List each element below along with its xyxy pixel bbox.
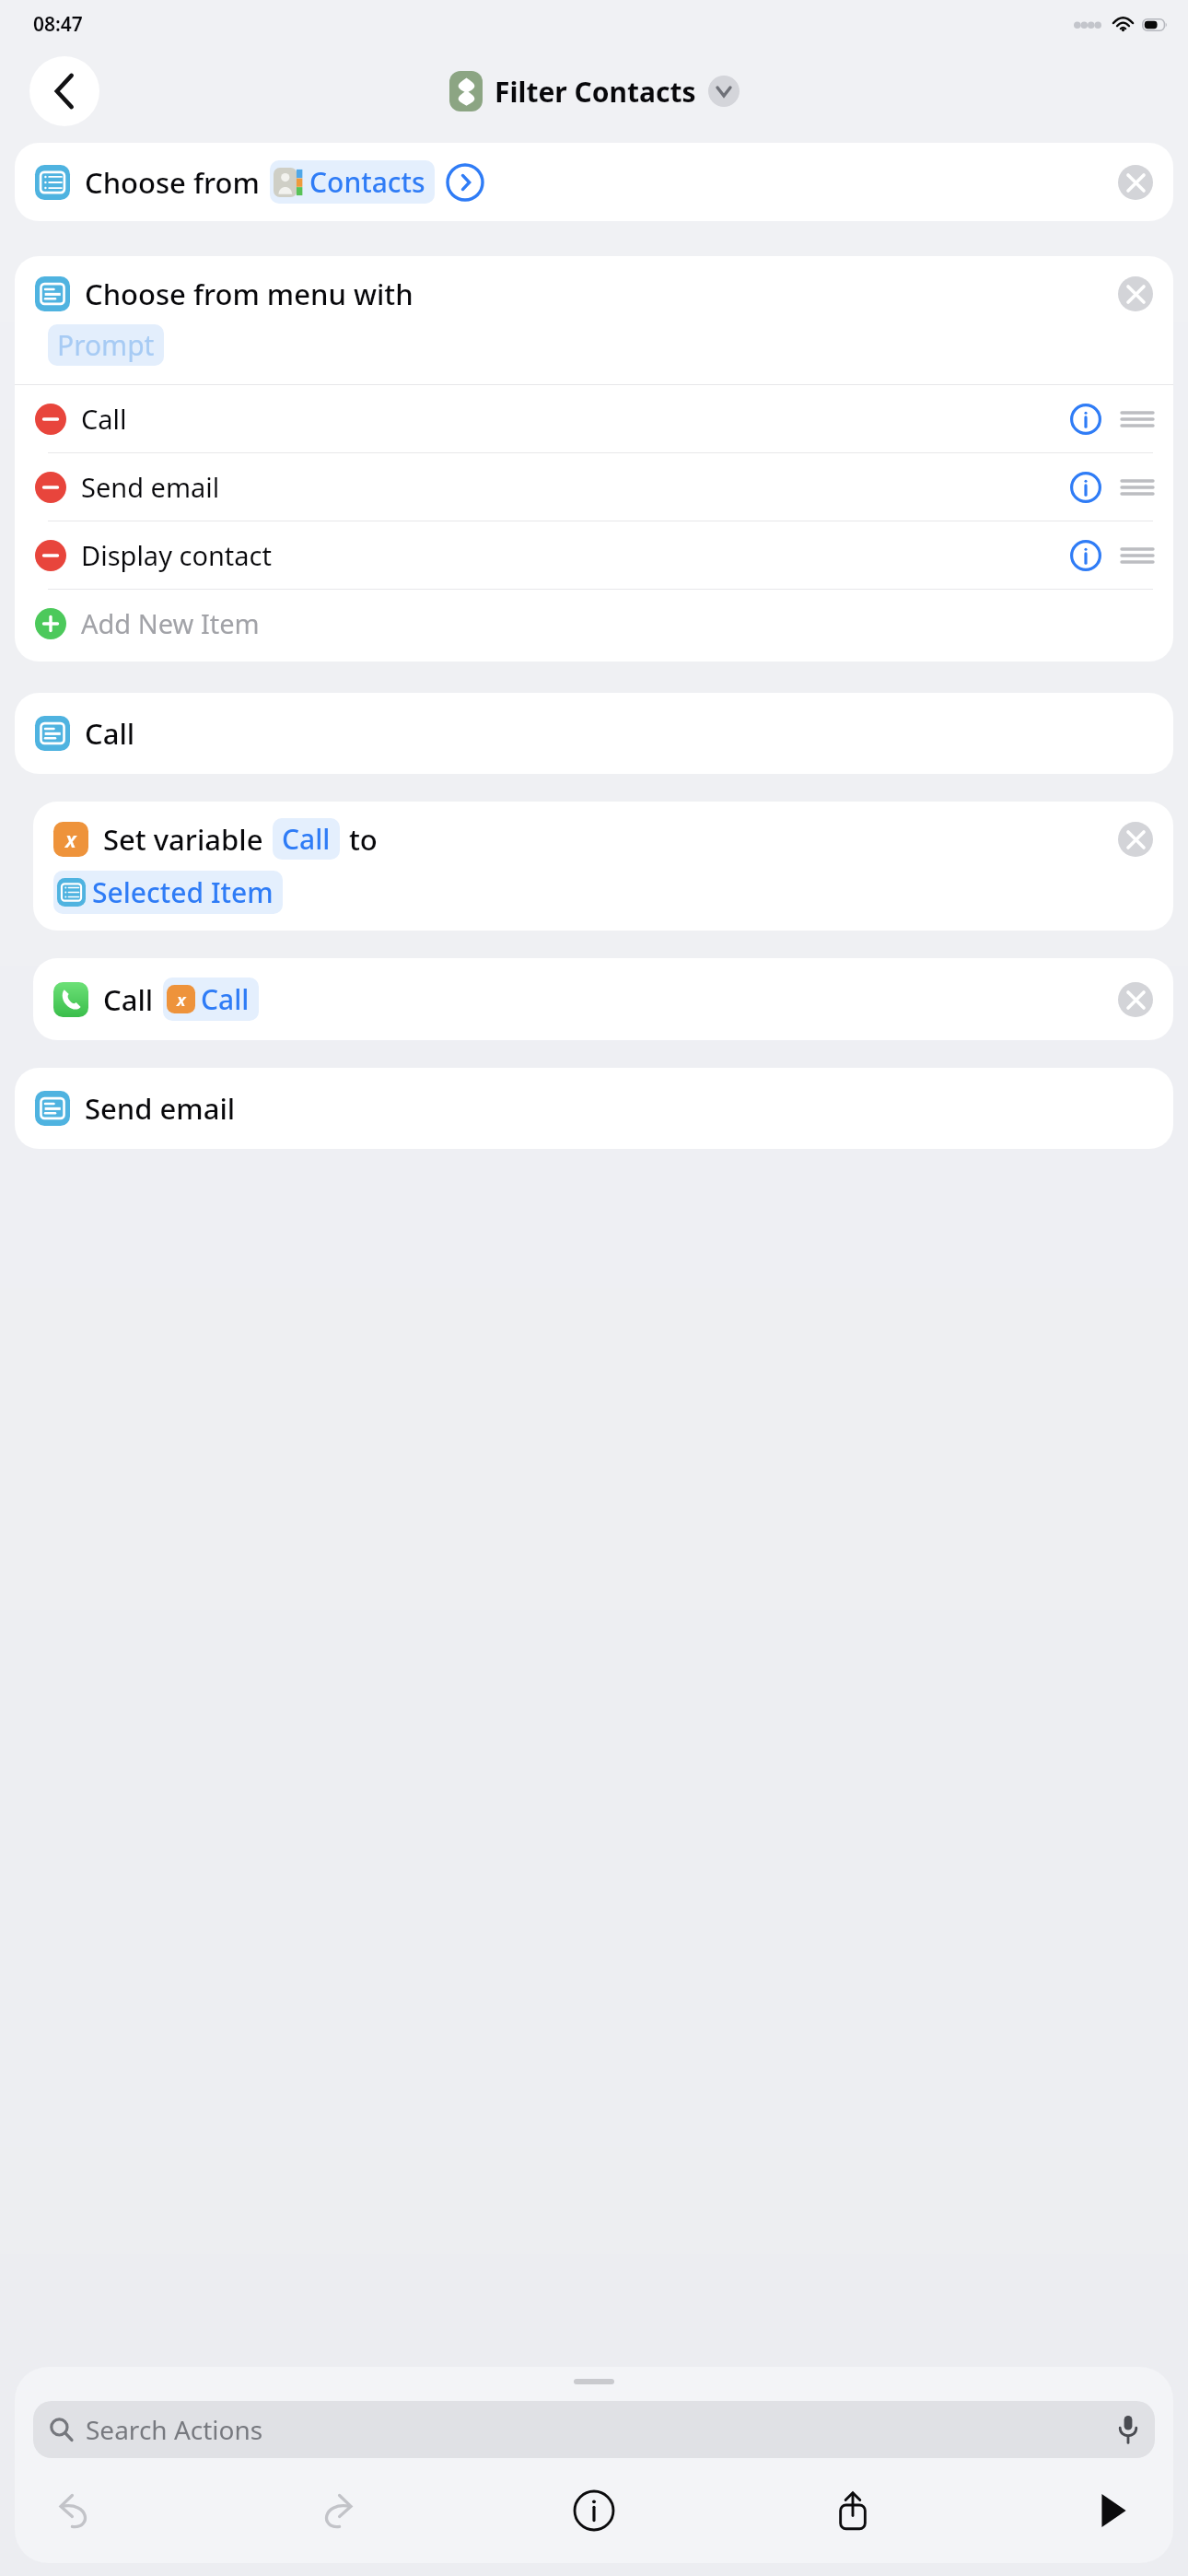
button[interactable]: Delete action (1118, 276, 1153, 311)
button[interactable]: Reorder Display contact (1122, 545, 1153, 566)
staticText: Send email (81, 469, 220, 505)
button[interactable]: Contacts (270, 160, 435, 204)
button[interactable]: Call (33, 958, 1173, 1040)
button[interactable]: Send email (15, 1068, 1173, 1149)
button[interactable]: Prompt (48, 324, 164, 366)
staticText: to (349, 820, 378, 859)
button[interactable]: Remove Call (35, 404, 66, 435)
staticText: Contacts (309, 163, 425, 201)
staticText: Selected Item (92, 873, 274, 911)
staticText: Filter Contacts (495, 73, 696, 111)
staticText: Call (201, 980, 250, 1018)
button[interactable]: Delete action (1118, 822, 1153, 857)
button[interactable]: Choose from menu with (15, 256, 1173, 662)
button[interactable]: Remove Display contact (15, 521, 1173, 589)
staticText: Call (103, 980, 154, 1019)
staticText: Display contact (81, 537, 272, 573)
button[interactable]: Call (273, 818, 340, 860)
button[interactable]: Back (29, 56, 99, 126)
button[interactable]: Reorder Call (1122, 409, 1153, 429)
button[interactable]: Selected Item (53, 871, 283, 914)
button[interactable]: Shortcut info (560, 2476, 628, 2545)
button[interactable]: Remove Send email (15, 453, 1173, 521)
staticText: Prompt (57, 326, 155, 364)
button[interactable]: Search Actions (33, 2401, 1155, 2458)
button[interactable]: Delete action (1118, 982, 1153, 1017)
button[interactable]: Remove Display contact (35, 540, 66, 571)
button[interactable]: Call (15, 693, 1173, 774)
button[interactable]: x (33, 802, 1173, 931)
button[interactable]: Show details (446, 163, 484, 202)
staticText: Choose from menu with (85, 275, 413, 313)
button[interactable]: Undo (42, 2476, 111, 2545)
button[interactable]: Run shortcut (1077, 2476, 1146, 2545)
staticText: x (177, 988, 186, 1011)
staticText: Add New Item (81, 605, 260, 641)
button[interactable]: x (163, 978, 259, 1021)
button[interactable]: Redo (301, 2476, 369, 2545)
button[interactable]: Share (819, 2476, 887, 2545)
button[interactable]: Add New Item (15, 590, 1173, 650)
button[interactable]: Info Display contact (1070, 540, 1101, 571)
staticText: 08:47 (33, 11, 83, 38)
button[interactable]: Remove Call (15, 385, 1173, 452)
staticText: Call (282, 820, 331, 858)
staticText: Call (81, 401, 127, 437)
button[interactable]: Remove Send email (35, 472, 66, 503)
staticText: Send email (85, 1089, 236, 1128)
staticText: Call (85, 714, 135, 753)
staticText: Choose from (85, 163, 260, 202)
button[interactable]: Info Send email (1070, 472, 1101, 503)
button[interactable]: Choose from (15, 143, 1173, 221)
button[interactable]: Delete action (1118, 165, 1153, 200)
button[interactable]: Info Call (1070, 404, 1101, 435)
button[interactable]: Shortcut options (708, 76, 740, 107)
button[interactable]: Reorder Send email (1122, 477, 1153, 498)
staticText: Search Actions (86, 2412, 263, 2447)
other: Voice search (1118, 2416, 1138, 2443)
staticText: x (65, 825, 76, 854)
staticText: Set variable (103, 820, 263, 859)
